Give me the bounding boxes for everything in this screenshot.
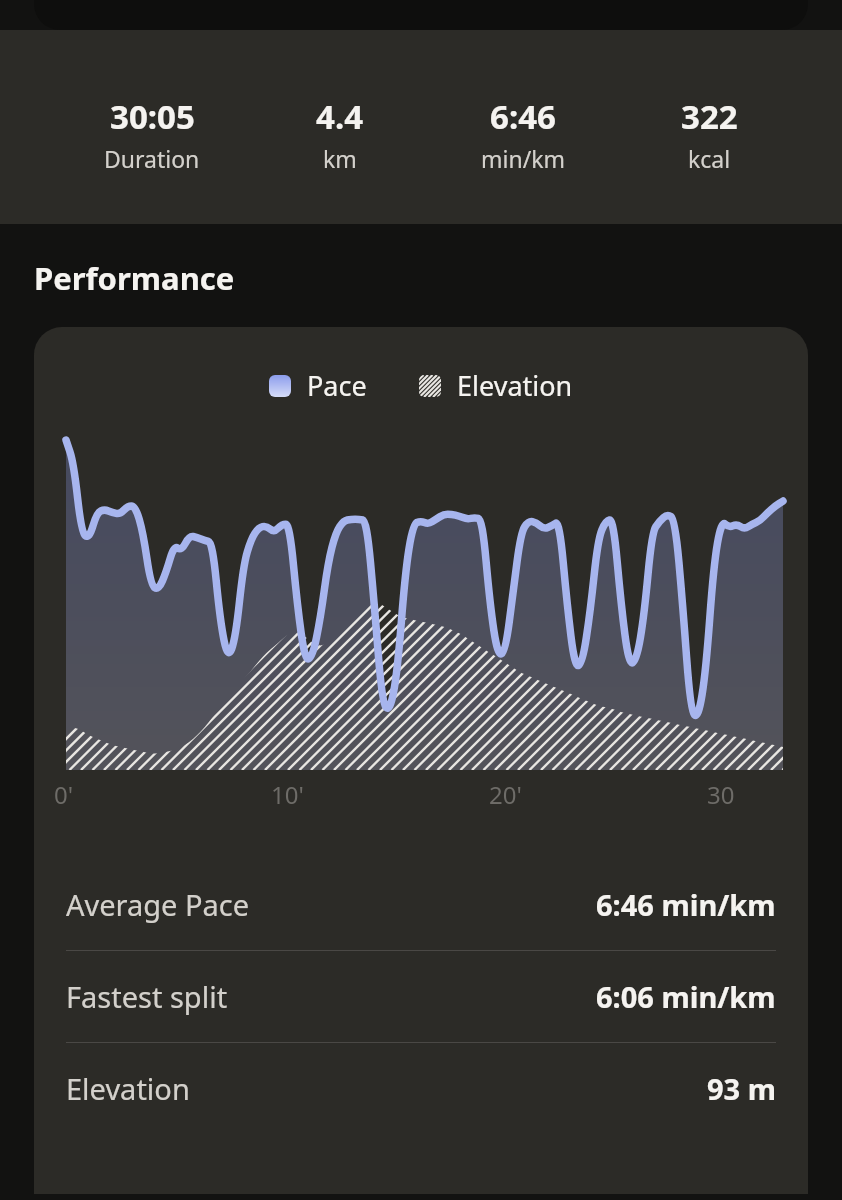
staticText: Fastest split [66, 977, 228, 1016]
staticText: kcal [688, 143, 731, 174]
staticText: 4.4 [316, 94, 364, 139]
staticText: 30 [707, 778, 735, 811]
button[interactable]: Elevation [34, 1043, 808, 1134]
staticText: km [323, 143, 357, 174]
staticText: 6:46 min/km [596, 885, 776, 924]
staticText: 30:05 [110, 94, 195, 139]
staticText: Duration [104, 143, 200, 174]
staticText: Performance [34, 257, 235, 299]
button[interactable]: 322 [669, 94, 750, 174]
staticText: 20' [489, 778, 522, 811]
staticText: 10' [271, 778, 304, 811]
button[interactable]: Average Pace [34, 859, 808, 950]
staticText: 6:06 min/km [596, 977, 776, 1016]
button[interactable]: 30:05 [92, 94, 212, 174]
staticText: Elevation [66, 1069, 190, 1108]
staticText: Elevation [457, 367, 573, 404]
button[interactable]: Fastest split [34, 951, 808, 1042]
button[interactable]: Elevation [419, 367, 573, 404]
staticText: min/km [481, 143, 565, 174]
staticText: 93 m [707, 1069, 776, 1108]
staticText: 322 [681, 94, 738, 139]
button[interactable]: 4.4 [304, 94, 376, 174]
staticText: Average Pace [66, 885, 250, 924]
staticText: Pace [307, 367, 367, 404]
button[interactable]: Pace [269, 367, 367, 404]
staticText: 0' [54, 778, 74, 811]
button[interactable]: 6:46 [469, 94, 577, 174]
staticText: 6:46 [490, 94, 556, 139]
